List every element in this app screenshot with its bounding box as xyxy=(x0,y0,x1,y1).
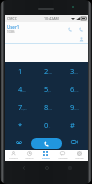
button[interactable]: Call xyxy=(66,25,75,34)
staticText: + xyxy=(49,126,51,129)
staticText: JKL xyxy=(48,90,52,93)
staticText: ABC xyxy=(48,72,53,75)
staticText: GHI xyxy=(22,90,26,93)
staticText: DEF xyxy=(74,72,78,75)
staticText: CMCC xyxy=(7,16,18,21)
button[interactable]: User1 xyxy=(5,23,88,35)
staticText: Dialpad xyxy=(42,157,50,160)
button[interactable]: Recents xyxy=(21,150,37,161)
staticText: 9 xyxy=(70,102,75,112)
staticText: # xyxy=(70,120,75,130)
staticText: TUV xyxy=(48,108,53,111)
button[interactable]: Home xyxy=(42,163,51,172)
staticText: 5 xyxy=(44,84,49,94)
button[interactable]: Video call xyxy=(77,25,86,34)
button[interactable]: Recent apps xyxy=(65,163,74,172)
button[interactable]: * xyxy=(7,116,33,134)
staticText: 4 xyxy=(18,84,23,94)
staticText: WXYZ xyxy=(73,108,79,111)
button[interactable]: 9 xyxy=(59,98,85,116)
button[interactable]: Dialpad xyxy=(37,150,54,161)
staticText: User1 xyxy=(7,24,20,30)
button[interactable]: 4 xyxy=(7,80,33,98)
button[interactable]: Message xyxy=(54,150,71,161)
staticText: MNO xyxy=(73,90,79,93)
staticText: Recents xyxy=(25,157,34,160)
button[interactable]: # xyxy=(59,116,85,134)
button[interactable]: Voicemail xyxy=(14,137,24,147)
button[interactable]: Add contact xyxy=(77,35,85,43)
staticText: Contacts xyxy=(9,157,18,160)
staticText: 1 xyxy=(18,66,23,76)
staticText: 6 xyxy=(70,84,75,94)
button[interactable]: 2 xyxy=(33,62,59,80)
button[interactable]: 3 xyxy=(59,62,85,80)
button[interactable]: Video call xyxy=(69,137,79,147)
button[interactable]: Settings xyxy=(71,150,88,161)
button[interactable]: 6 xyxy=(59,80,85,98)
button[interactable]: Contacts xyxy=(5,150,21,161)
button[interactable]: 8 xyxy=(33,98,59,116)
staticText: 3 xyxy=(70,66,75,76)
staticText: Settings xyxy=(75,157,84,160)
button[interactable]: Back xyxy=(19,163,28,172)
button[interactable]: 7 xyxy=(7,98,33,116)
staticText: 8 xyxy=(44,102,49,112)
staticText: PQRS xyxy=(21,108,27,111)
staticText: 7 xyxy=(18,102,23,112)
staticText: 10086 xyxy=(7,30,15,34)
staticText: 0 xyxy=(44,120,49,130)
button[interactable]: 0 xyxy=(33,116,59,134)
button[interactable]: 5 xyxy=(33,80,59,98)
staticText: 10:42AM xyxy=(44,16,59,21)
staticText: Message xyxy=(58,157,68,160)
button[interactable]: 1 xyxy=(7,62,33,80)
staticText: 2 xyxy=(44,66,49,76)
button[interactable]: Call xyxy=(31,138,62,149)
staticText: * xyxy=(18,120,23,130)
